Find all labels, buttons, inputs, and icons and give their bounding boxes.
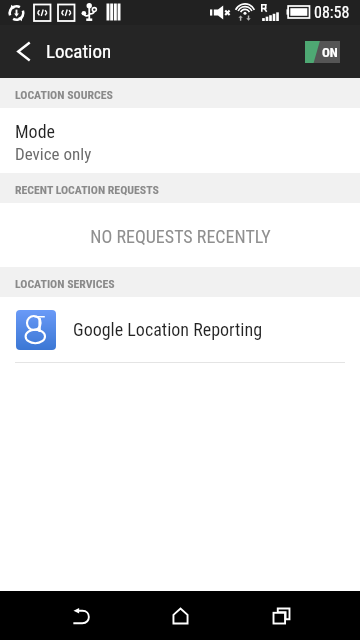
staticText: Google Location Reporting (73, 319, 263, 340)
button[interactable]: Navigate up (0, 25, 46, 78)
staticText: Location (46, 40, 112, 62)
button[interactable]: Mode (0, 108, 360, 173)
staticText: 08:58 (314, 3, 350, 22)
staticText: RECENT LOCATION REQUESTS (15, 183, 159, 197)
button[interactable]: Back (41, 591, 121, 640)
button[interactable]: Home (140, 591, 220, 640)
staticText: ON (322, 45, 338, 60)
button[interactable]: Recent apps (241, 591, 321, 640)
staticText: LOCATION SERVICES (15, 277, 115, 291)
button[interactable]: Location switch, on (305, 41, 340, 63)
staticText: NO REQUESTS RECENTLY (90, 226, 271, 247)
button[interactable]: Google Location Reporting (0, 297, 360, 362)
staticText: LOCATION SOURCES (15, 88, 113, 102)
staticText: Mode (15, 121, 55, 142)
staticText: Device only (15, 144, 92, 164)
